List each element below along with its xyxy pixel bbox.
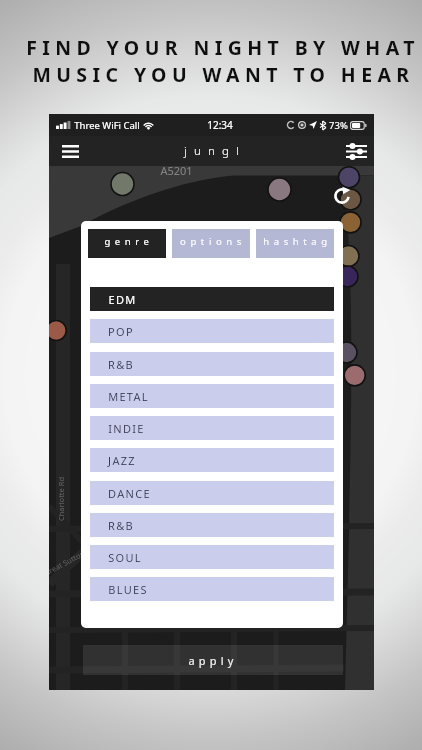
- staticText: R&B: [108, 518, 134, 533]
- button[interactable]: POP: [90, 319, 334, 343]
- staticText: A5201: [160, 163, 193, 178]
- staticText: R&B: [108, 357, 134, 372]
- staticText: POP: [108, 324, 134, 339]
- staticText: genre: [104, 235, 154, 248]
- button[interactable]: INDIE: [90, 416, 334, 440]
- staticText: JAZZ: [108, 453, 136, 468]
- button[interactable]: Filters: [342, 137, 370, 165]
- staticText: jungl: [184, 143, 246, 159]
- staticText: EDM: [108, 292, 137, 307]
- button[interactable]: EDM: [90, 287, 334, 311]
- staticText: Three WiFi Call: [74, 119, 140, 132]
- button[interactable]: Menu: [56, 137, 84, 165]
- button[interactable]: SOUL: [90, 545, 334, 569]
- button[interactable]: options: [172, 229, 250, 258]
- button[interactable]: METAL: [90, 384, 334, 408]
- staticText: Great Sutton St: [49, 544, 94, 578]
- staticText: FIND YOUR NIGHT BY WHAT: [26, 34, 420, 61]
- staticText: hashtag: [263, 235, 332, 248]
- button[interactable]: genre: [88, 229, 166, 258]
- staticText: BLUES: [108, 582, 148, 597]
- staticText: MUSIC YOU WANT TO HEAR: [32, 61, 415, 88]
- staticText: apply: [188, 653, 238, 668]
- button[interactable]: hashtag: [256, 229, 334, 258]
- staticText: INDIE: [108, 421, 145, 436]
- staticText: DANCE: [108, 486, 151, 501]
- button[interactable]: BLUES: [90, 577, 334, 601]
- staticText: METAL: [108, 389, 149, 404]
- staticText: 73%: [329, 119, 348, 132]
- staticText: Charlotte Rd: [55, 476, 65, 521]
- button[interactable]: JAZZ: [90, 448, 334, 472]
- button[interactable]: R&B: [90, 513, 334, 537]
- staticText: 12:34: [207, 118, 233, 132]
- button[interactable]: R&B: [90, 352, 334, 376]
- button[interactable]: apply: [83, 645, 343, 675]
- staticText: SOUL: [108, 550, 142, 565]
- button[interactable]: DANCE: [90, 481, 334, 505]
- staticText: options: [180, 235, 246, 248]
- button[interactable]: Refresh: [331, 185, 353, 207]
